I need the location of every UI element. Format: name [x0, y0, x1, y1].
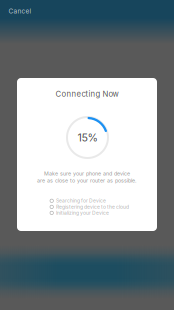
- staticText: 15%: [77, 131, 97, 144]
- staticText: Make sure your phone and device: [44, 170, 130, 177]
- staticText: Initializing your Device: [56, 210, 109, 216]
- staticText: Connecting Now: [55, 89, 118, 99]
- staticText: are as close to your router as possible.: [37, 177, 137, 184]
- button[interactable]: Cancel: [0, 2, 40, 20]
- staticText: Cancel: [8, 7, 31, 15]
- staticText: Registering device to the cloud: [56, 204, 129, 210]
- staticText: Searching for Device: [56, 198, 106, 204]
